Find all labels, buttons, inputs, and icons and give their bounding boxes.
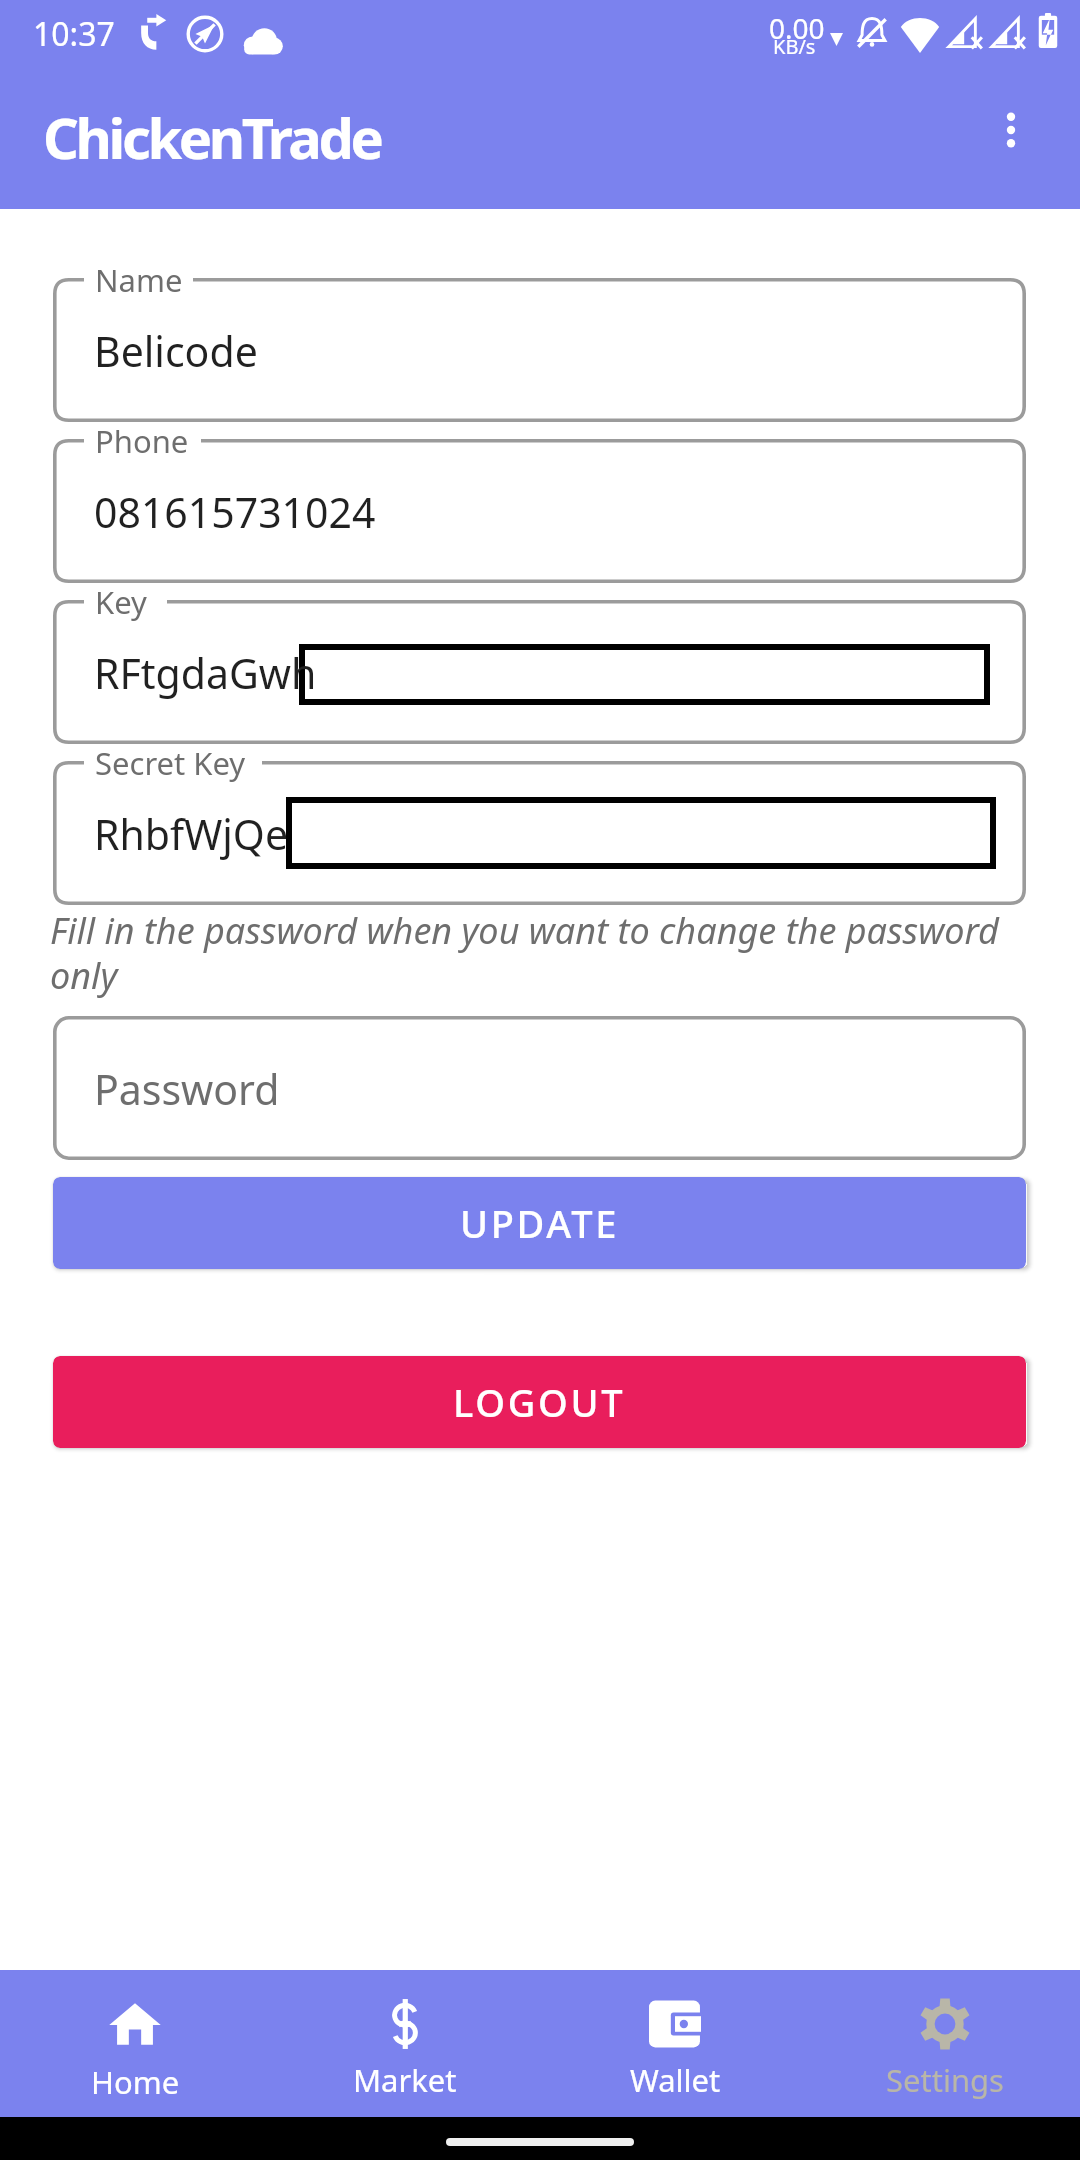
button[interactable]: Name [53, 278, 1026, 422]
staticText: Market [353, 2059, 457, 2101]
button[interactable]: Wallet [540, 1970, 810, 2117]
staticText: RhbfWjQe [94, 806, 289, 862]
staticText: Fill in the password when you want to ch… [50, 906, 999, 1000]
button[interactable]: Market [270, 1970, 540, 2117]
button[interactable]: Key [53, 600, 1026, 744]
staticText: 10:37 [33, 12, 115, 56]
button[interactable]: UPDATE [53, 1177, 1026, 1269]
button[interactable]: Phone [53, 439, 1026, 583]
button[interactable]: LOGOUT [53, 1356, 1026, 1448]
button[interactable]: Password [53, 1016, 1026, 1160]
staticText: Password [94, 1061, 280, 1117]
staticText: Home [91, 2061, 180, 2103]
staticText: ChickenTrade [43, 99, 381, 175]
staticText: Secret Key [95, 742, 246, 784]
staticText: 0.00 [769, 9, 825, 47]
button[interactable]: Home [0, 1970, 270, 2117]
staticText: LOGOUT [453, 1376, 626, 1428]
button[interactable]: Settings [810, 1970, 1080, 2117]
staticText: 081615731024 [94, 484, 376, 540]
staticText: Wallet [630, 2059, 721, 2101]
button[interactable]: Secret Key [53, 761, 1026, 905]
staticText: Belicode [94, 323, 258, 379]
staticText: Name [95, 259, 183, 301]
staticText: Key [95, 581, 147, 623]
button[interactable]: More options [975, 94, 1047, 166]
staticText: Settings [886, 2059, 1004, 2101]
staticText: RFtgdaGwh [94, 645, 317, 701]
staticText: KB/s [773, 33, 816, 60]
staticText: UPDATE [460, 1197, 620, 1249]
staticText: Phone [95, 420, 189, 462]
